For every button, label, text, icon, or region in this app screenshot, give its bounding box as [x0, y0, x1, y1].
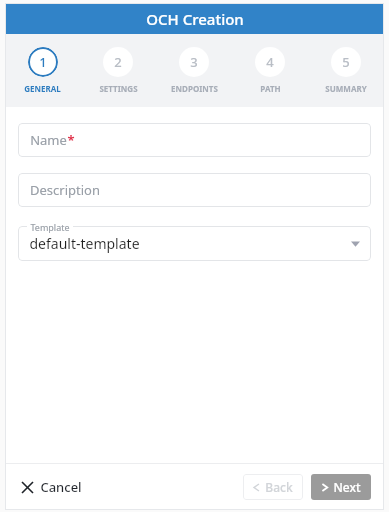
staticText: 2: [114, 53, 122, 71]
staticText: default-template: [29, 234, 140, 253]
staticText: Next: [333, 479, 361, 495]
staticText: Template: [30, 221, 70, 233]
staticText: PATH: [260, 83, 281, 94]
staticText: Back: [265, 479, 293, 495]
staticText: 4: [266, 53, 274, 71]
button[interactable]: 5: [308, 47, 384, 94]
staticText: 5: [342, 53, 350, 71]
button[interactable]: Back: [243, 474, 303, 500]
staticText: Cancel: [40, 478, 82, 496]
staticText: ENDPOINTS: [171, 83, 218, 94]
button[interactable]: Cancel: [18, 474, 86, 500]
button[interactable]: Name: [18, 123, 371, 157]
button[interactable]: default-template: [18, 226, 371, 261]
button[interactable]: 2: [80, 47, 156, 94]
staticText: SETTINGS: [99, 83, 138, 94]
button[interactable]: Next: [311, 474, 371, 500]
button[interactable]: Description: [18, 173, 371, 207]
staticText: 1: [39, 53, 47, 71]
staticText: SUMMARY: [325, 83, 367, 94]
button[interactable]: 1: [5, 47, 80, 94]
staticText: GENERAL: [24, 83, 61, 94]
staticText: OCH Creation: [146, 9, 244, 29]
staticText: 3: [190, 53, 198, 71]
staticText: Name: [30, 131, 67, 149]
button[interactable]: 4: [232, 47, 308, 94]
button[interactable]: 3: [156, 47, 232, 94]
staticText: *: [67, 131, 75, 149]
staticText: Description: [30, 181, 100, 199]
